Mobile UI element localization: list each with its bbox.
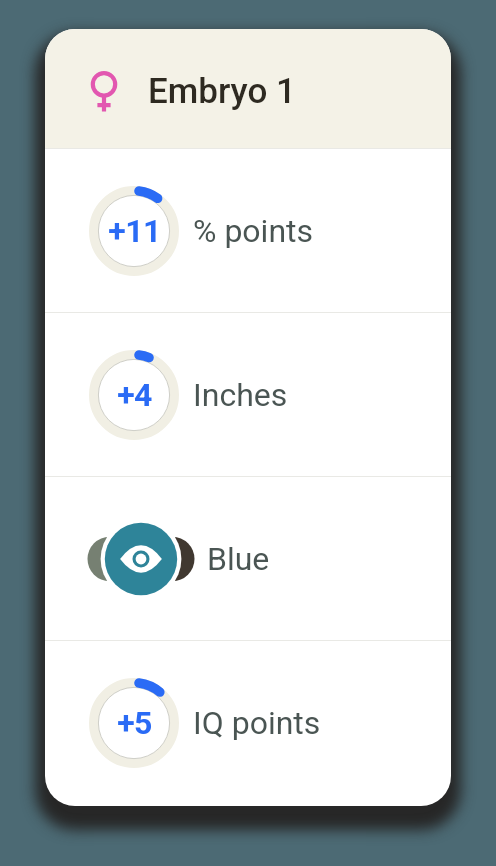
button[interactable]: +5 [45, 641, 451, 804]
staticText: Inches [193, 376, 288, 414]
button[interactable]: Eye colour: Blue [45, 477, 451, 640]
staticText: Blue [207, 540, 270, 578]
button[interactable]: Embryo 1 [45, 29, 451, 148]
staticText: Embryo 1 [148, 71, 296, 112]
staticText: +11 [108, 212, 161, 250]
staticText: +5 [117, 704, 152, 742]
other: Eye colour: Blue [89, 514, 193, 604]
staticText: % points [193, 212, 314, 250]
staticText: IQ points [193, 704, 321, 742]
staticText: +4 [117, 376, 152, 414]
button[interactable]: +11 [45, 149, 451, 312]
button[interactable]: +4 [45, 313, 451, 476]
